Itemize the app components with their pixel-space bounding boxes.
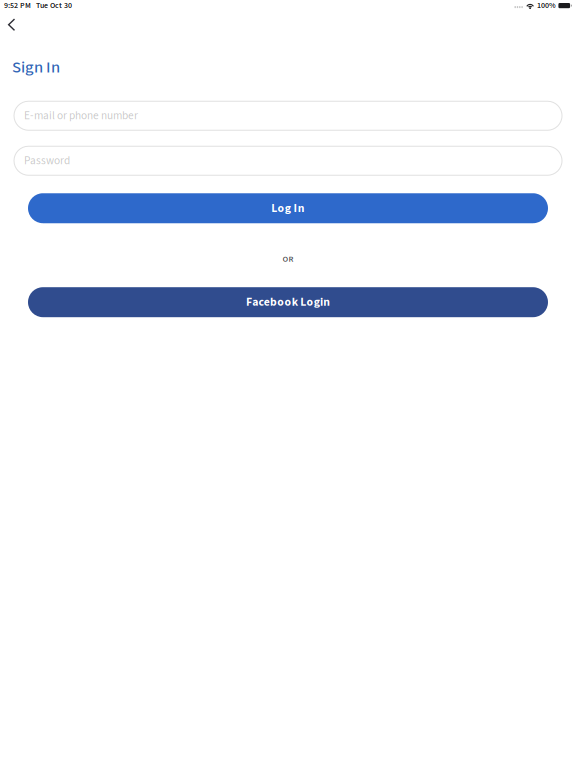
staticText: Password [24, 153, 70, 169]
button[interactable]: Facebook Login [28, 287, 548, 317]
staticText: Log In [271, 200, 305, 217]
button[interactable]: Log In [28, 193, 548, 223]
staticText: 100% [537, 0, 556, 11]
staticText: Tue Oct 30 [36, 0, 72, 11]
staticText: 9:52 PM [4, 0, 31, 11]
staticText: OR [282, 253, 293, 265]
staticText: E-mail or phone number [24, 108, 138, 124]
button[interactable]: Back [0, 10, 25, 35]
staticText: Sign In [12, 55, 60, 79]
staticText: Facebook Login [246, 294, 330, 310]
